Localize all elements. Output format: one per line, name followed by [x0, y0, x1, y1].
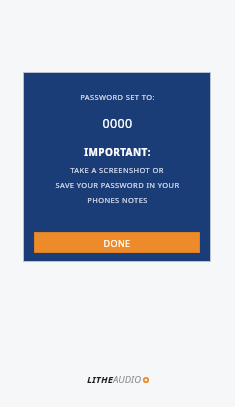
staticText: PASSWORD SET TO: — [80, 92, 155, 102]
staticText: TAKE A SCREENSHOT OR — [70, 165, 164, 175]
staticText: 0000 — [102, 115, 133, 132]
button[interactable]: DONE — [34, 232, 200, 253]
staticText: PHONES NOTES — [87, 195, 148, 205]
staticText: SAVE YOUR PASSWORD IN YOUR — [55, 180, 180, 190]
staticText: IMPORTANT: — [84, 145, 151, 159]
staticText: LITHE — [87, 373, 113, 386]
staticText: AUDIO — [113, 373, 142, 386]
staticText: DONE — [103, 237, 131, 249]
